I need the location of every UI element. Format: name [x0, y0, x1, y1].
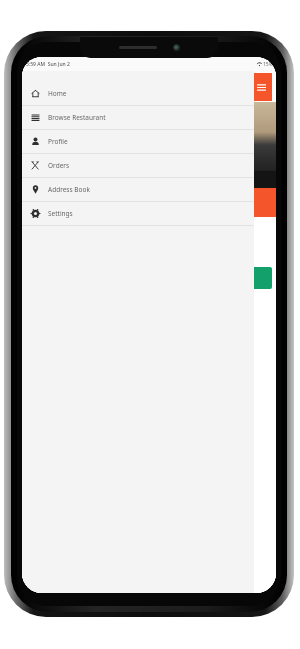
button[interactable] — [24, 267, 272, 289]
staticText: 3:59 AM Sun Jun 2 — [26, 61, 70, 68]
button[interactable]: Address Book — [22, 178, 254, 201]
staticText: 15% — [263, 61, 273, 68]
button[interactable]: Orders — [22, 154, 254, 177]
button[interactable]: Settings — [22, 202, 254, 225]
staticText: Profile — [48, 137, 68, 146]
staticText: Orders — [48, 161, 70, 170]
staticText: Home — [48, 89, 67, 98]
button[interactable]: Home — [22, 82, 254, 105]
button[interactable]: Profile — [22, 130, 254, 153]
staticText: Browse Restaurant — [48, 113, 106, 122]
staticText: Schedule — [26, 251, 276, 259]
staticText: Settings — [48, 209, 73, 218]
staticText: Address Book — [48, 185, 90, 194]
button[interactable]: Open navigation menu — [250, 73, 272, 101]
button[interactable]: Browse Restaurant — [22, 106, 254, 129]
